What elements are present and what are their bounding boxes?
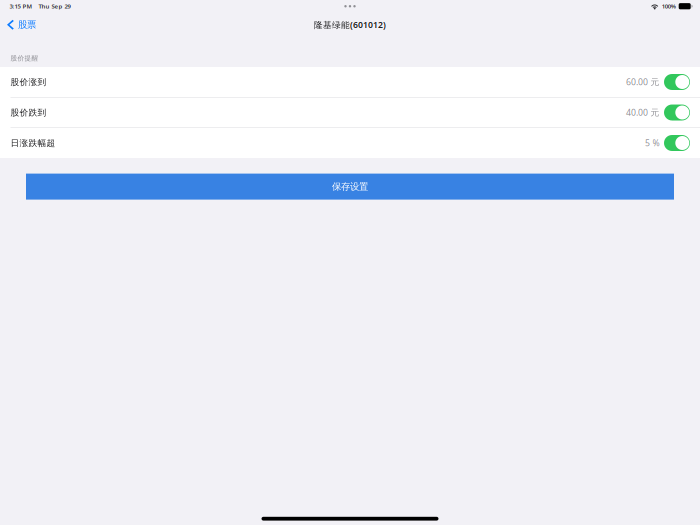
staticText: 日涨跌幅超 [10, 137, 55, 148]
staticText: 股票 [18, 19, 36, 31]
button[interactable]: 股价涨到 [0, 67, 659, 97]
staticText: 股价跌到 [10, 107, 46, 118]
button[interactable]: 股价跌到 [0, 98, 659, 127]
button[interactable]: 股票 [0, 12, 43, 37]
staticText: 100% [662, 2, 676, 10]
button[interactable]: 保存设置 [26, 174, 674, 200]
staticText: 60.00 [626, 76, 648, 88]
staticText: 隆基绿能(601012) [314, 19, 386, 31]
staticText: 5 [645, 137, 650, 149]
button[interactable]: 股价跌到 提醒开关 [664, 104, 690, 120]
button[interactable]: 股价涨到 提醒开关 [664, 74, 690, 90]
staticText: 3:15 PM [9, 2, 32, 10]
staticText: 元 [650, 76, 659, 87]
staticText: 40.00 [626, 107, 648, 118]
staticText: 股价涨到 [10, 76, 46, 87]
staticText: 股价提醒 [10, 54, 38, 62]
button[interactable]: 日涨跌幅超 [0, 128, 659, 158]
button[interactable]: 日涨跌幅超 提醒开关 [664, 135, 690, 151]
staticText: Thu Sep 29 [38, 2, 70, 10]
staticText: 元 [650, 107, 659, 118]
staticText: 保存设置 [332, 181, 368, 192]
staticText: % [652, 137, 659, 149]
